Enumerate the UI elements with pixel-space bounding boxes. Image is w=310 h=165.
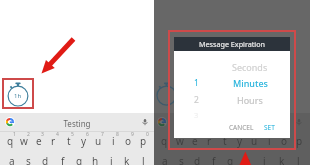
staticText: h	[244, 154, 251, 165]
button[interactable]: l	[135, 152, 151, 165]
button[interactable]: p	[136, 132, 151, 148]
staticText: j	[110, 154, 113, 165]
button[interactable]: g	[71, 152, 87, 165]
staticText: 9	[131, 131, 134, 138]
staticText: s	[26, 154, 31, 165]
button[interactable]: j	[256, 152, 273, 165]
button[interactable]: e	[187, 132, 202, 148]
staticText: e	[192, 134, 198, 148]
staticText: Message Expiration	[199, 39, 266, 49]
button[interactable]: SET	[261, 121, 278, 134]
staticText: 5	[71, 131, 74, 138]
staticText: a	[162, 154, 168, 165]
staticText: u	[251, 134, 258, 148]
button[interactable]: h	[239, 152, 256, 165]
button[interactable]: a	[3, 152, 20, 165]
staticText: k	[124, 154, 130, 165]
staticText: u	[95, 134, 102, 148]
button[interactable]: Hours	[220, 92, 280, 108]
button[interactable]: t	[217, 132, 232, 148]
button[interactable]: g	[222, 152, 239, 165]
staticText: j	[263, 154, 266, 165]
button[interactable]: i	[262, 132, 277, 148]
button[interactable]: r	[202, 132, 217, 148]
button[interactable]: f	[54, 152, 71, 165]
button[interactable]: p	[292, 132, 307, 148]
staticText: SET	[264, 123, 275, 132]
staticText: Testing	[0, 118, 154, 129]
staticText: r	[207, 134, 212, 148]
staticText: g	[227, 154, 234, 165]
button[interactable]: d	[189, 152, 205, 165]
button[interactable]: a	[157, 152, 173, 165]
button[interactable]: d	[37, 152, 54, 165]
staticText: 4	[56, 131, 59, 138]
staticText: r	[51, 134, 56, 148]
staticText: g	[76, 154, 83, 165]
staticText: t	[67, 134, 71, 148]
staticText: e	[36, 134, 42, 148]
button[interactable]: u	[91, 132, 106, 148]
staticText: f	[61, 154, 65, 165]
button[interactable]: k	[273, 152, 290, 165]
button[interactable]: u	[247, 132, 262, 148]
button[interactable]: q	[3, 132, 17, 148]
staticText: q	[161, 134, 168, 148]
staticText: Minutes	[233, 77, 268, 89]
staticText: 1	[194, 77, 199, 89]
staticText: Seconds	[232, 61, 268, 73]
staticText: 2	[27, 131, 30, 138]
staticText: s	[179, 154, 184, 165]
button[interactable]: w	[17, 132, 31, 148]
staticText: 1	[13, 131, 16, 138]
staticText: i	[112, 134, 115, 148]
staticText: p	[296, 134, 303, 148]
staticText: y	[237, 134, 243, 148]
button[interactable]: o	[121, 132, 136, 148]
button[interactable]: Set expiration timer	[2, 78, 34, 109]
button[interactable]: t	[61, 132, 76, 148]
button[interactable]: l	[290, 152, 307, 165]
staticText: 8	[116, 131, 119, 138]
button[interactable]: CANCEL	[226, 121, 257, 134]
button[interactable]: i	[106, 132, 121, 148]
staticText: 2	[194, 94, 199, 106]
staticText: y	[81, 134, 87, 148]
staticText: a	[9, 154, 15, 165]
button[interactable]: w	[172, 132, 187, 148]
staticText: d	[42, 154, 49, 165]
staticText: f	[212, 154, 216, 165]
button[interactable]: y	[76, 132, 91, 148]
staticText: 1h	[14, 92, 22, 100]
staticText: 6	[86, 131, 89, 138]
button[interactable]: q	[157, 132, 172, 148]
button[interactable]: s	[20, 152, 37, 165]
button[interactable]: j	[103, 152, 119, 165]
button[interactable]: Minutes	[220, 75, 280, 91]
button[interactable]: s	[173, 152, 189, 165]
staticText: l	[142, 154, 145, 165]
staticText: w	[20, 134, 28, 148]
staticText: 3	[41, 131, 44, 138]
button[interactable]: r	[46, 132, 61, 148]
staticText: 0	[146, 131, 149, 138]
staticText: 7	[101, 131, 104, 138]
staticText: o	[125, 134, 132, 148]
staticText: h	[92, 154, 99, 165]
button[interactable]: f	[205, 152, 222, 165]
button[interactable]: e	[31, 132, 46, 148]
staticText: q	[7, 134, 14, 148]
staticText: l	[297, 154, 300, 165]
button[interactable]: y	[232, 132, 247, 148]
staticText: i	[268, 134, 271, 148]
staticText: k	[279, 154, 285, 165]
staticText: Hours	[237, 94, 263, 106]
staticText: p	[140, 134, 147, 148]
button[interactable]: Seconds	[220, 59, 280, 75]
staticText: d	[194, 154, 201, 165]
staticText: 3	[194, 110, 199, 120]
button[interactable]: o	[277, 132, 292, 148]
button[interactable]: h	[87, 152, 103, 165]
button[interactable]: k	[119, 152, 135, 165]
staticText: w	[176, 134, 184, 148]
